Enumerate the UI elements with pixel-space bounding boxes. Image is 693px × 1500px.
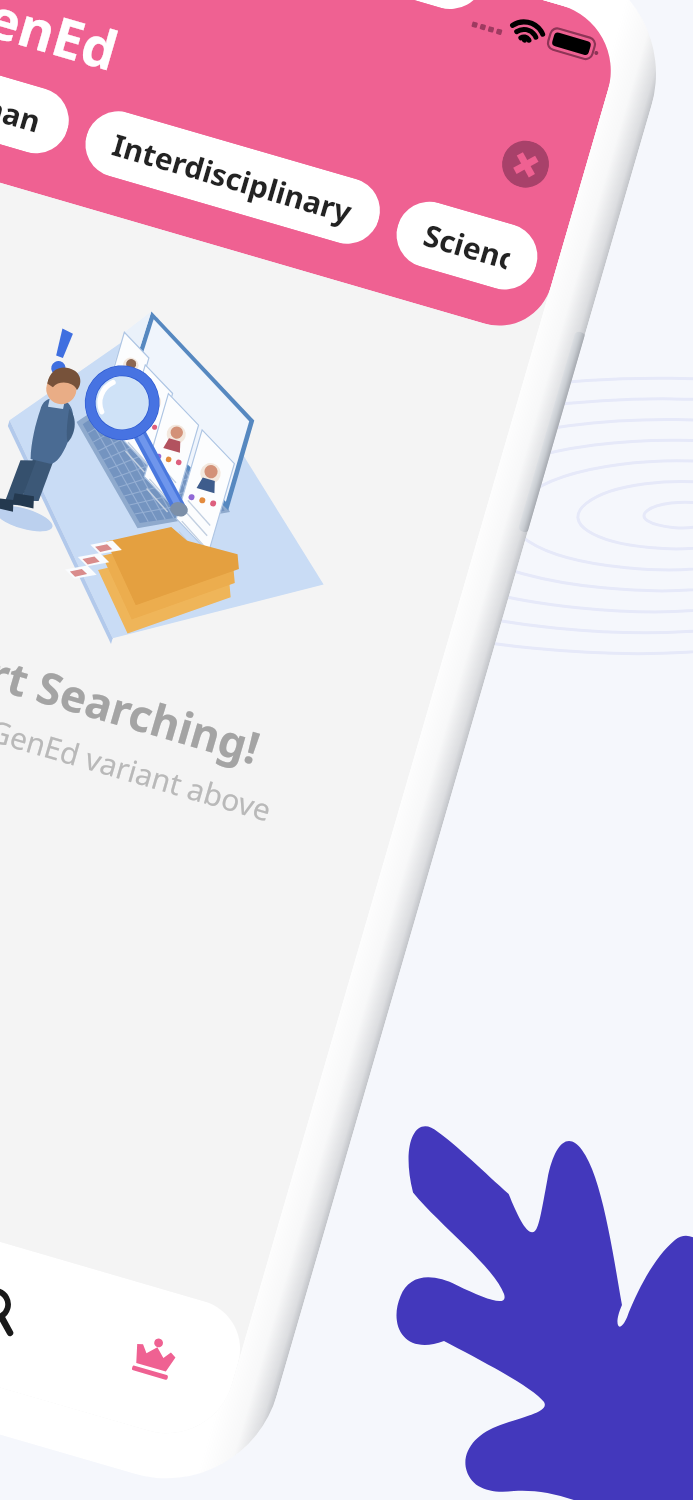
button[interactable]: Search — [0, 1224, 94, 1404]
staticText: Select a GenEd variant above — [0, 677, 276, 830]
staticText: Start Searching! — [0, 622, 267, 777]
button[interactable]: Premium — [55, 1269, 252, 1449]
staticText: Human — [0, 72, 46, 142]
staticText: GenEd — [0, 0, 127, 87]
staticText: Science — [419, 214, 515, 278]
button[interactable]: Clear filters — [496, 135, 555, 193]
button[interactable]: Human — [0, 57, 77, 161]
button[interactable]: Science — [389, 194, 545, 297]
staticText: Interdisciplinary — [108, 124, 357, 232]
button[interactable]: Interdisciplinary — [77, 103, 388, 252]
